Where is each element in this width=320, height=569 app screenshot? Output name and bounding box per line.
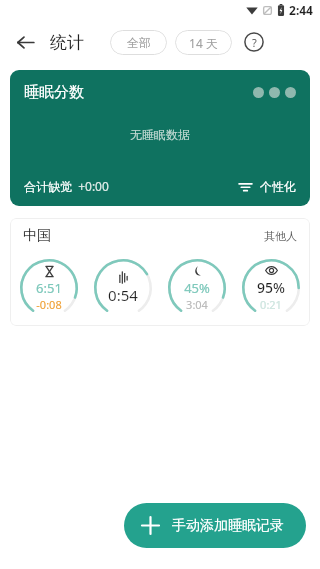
staticText: 中国 xyxy=(23,227,51,245)
button[interactable]: 手动添加睡眠记录 xyxy=(124,503,306,548)
button[interactable]: 全部 xyxy=(110,30,167,55)
staticText: ? xyxy=(252,35,257,50)
staticText: 2:44 xyxy=(289,2,313,18)
staticText: 0:54 xyxy=(108,285,138,305)
staticText: 14 天 xyxy=(189,35,218,51)
staticText: 3:04 xyxy=(186,297,208,312)
button[interactable]: 中国 xyxy=(10,218,310,326)
staticText: 手动添加睡眠记录 xyxy=(172,517,284,535)
staticText: +0:00 xyxy=(78,178,109,194)
button[interactable]: 个性化 xyxy=(238,179,296,194)
staticText: 95% xyxy=(257,278,285,297)
staticText: 个性化 xyxy=(260,179,296,194)
staticText: -0:08 xyxy=(36,297,62,312)
button[interactable]: 6:51 xyxy=(17,256,81,320)
staticText: 统计 xyxy=(50,32,84,53)
button[interactable]: 返回 xyxy=(8,25,42,59)
staticText: 0:21 xyxy=(260,297,282,312)
button[interactable]: 0:54 xyxy=(91,256,155,320)
staticText: 45% xyxy=(184,279,210,297)
staticText: 全部 xyxy=(127,35,151,50)
staticText: 其他人 xyxy=(264,229,297,243)
button[interactable]: 14 天 xyxy=(175,30,232,55)
button[interactable]: 帮助 xyxy=(239,27,269,57)
staticText: 无睡眠数据 xyxy=(130,127,190,142)
staticText: 6:51 xyxy=(36,279,62,297)
staticText: 合计缺觉 xyxy=(24,179,72,194)
button[interactable]: 45% xyxy=(165,256,229,320)
button[interactable]: 95% xyxy=(239,256,303,320)
button[interactable]: 睡眠分数 xyxy=(10,70,310,206)
staticText: 睡眠分数 xyxy=(24,83,84,102)
